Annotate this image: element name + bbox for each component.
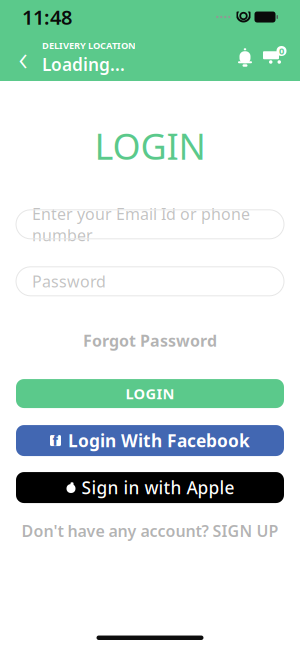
staticText: ‹ — [18, 34, 27, 80]
staticText: DELIVERY LOCATION — [42, 39, 136, 52]
staticText: Don't have any account? SIGN UP — [21, 520, 278, 541]
staticText: 0 — [279, 45, 284, 57]
staticText: LOGIN — [94, 122, 205, 170]
staticText: Sign in with Apple — [81, 476, 234, 499]
button[interactable]: LOGIN — [16, 379, 284, 408]
button[interactable]: Sign in with Apple — [16, 472, 284, 503]
button[interactable]: Cart, 0 items — [260, 37, 290, 77]
button[interactable]: f — [16, 425, 284, 456]
staticText: Forgot Password — [83, 330, 217, 351]
staticText: Password — [32, 271, 106, 292]
button[interactable]: Forgot Password — [71, 322, 229, 359]
staticText: Loading... — [42, 53, 125, 76]
button[interactable]: Don't have any account? SIGN UP — [11, 514, 288, 547]
staticText: Login With Facebook — [68, 429, 250, 452]
staticText: Enter your Email Id or phone number — [32, 203, 250, 246]
button[interactable]: Back — [10, 40, 36, 74]
button[interactable]: DELIVERY LOCATION — [36, 37, 136, 77]
staticText: LOGIN — [125, 384, 174, 403]
button[interactable]: Notifications — [230, 37, 260, 77]
staticText: f — [52, 432, 58, 449]
staticText: 11:48 — [22, 4, 72, 30]
